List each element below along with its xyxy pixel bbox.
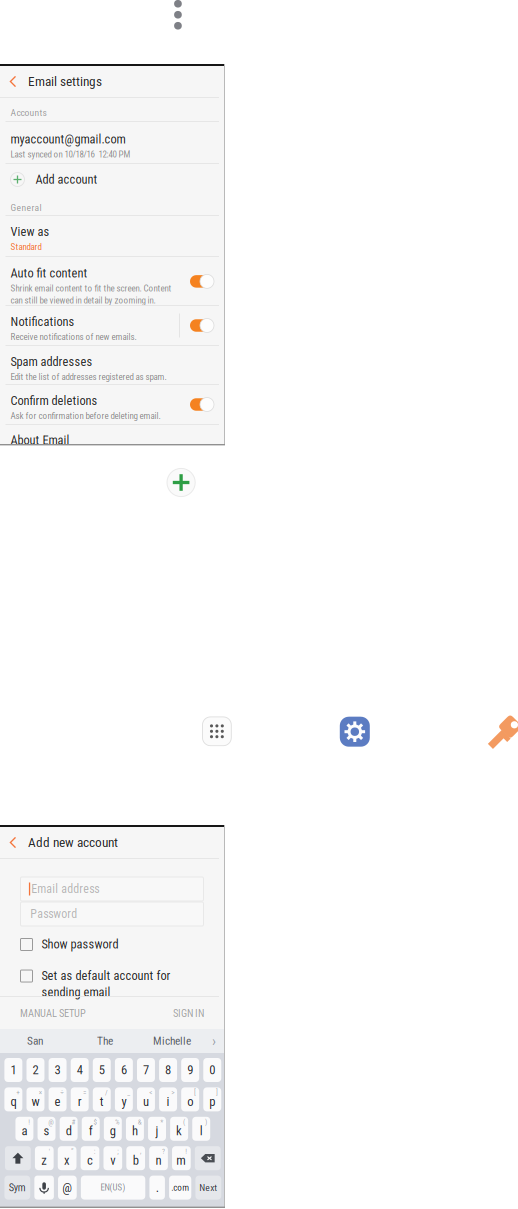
button[interactable]: EN(US)	[81, 1176, 145, 1200]
button[interactable]: MANUAL SETUP	[0, 997, 86, 1030]
button[interactable]: Michelle	[140, 1029, 204, 1053]
button[interactable]: 7	[137, 1058, 155, 1082]
button[interactable]: 4	[71, 1058, 89, 1082]
staticText: >	[171, 1088, 174, 1097]
button[interactable]: myaccount@gmail.com	[0, 122, 224, 163]
button[interactable]: The	[70, 1029, 140, 1053]
button[interactable]: 6	[115, 1058, 133, 1082]
staticText: Shrink email content to fit the screen. …	[10, 283, 171, 294]
staticText: q	[10, 1094, 16, 1109]
button[interactable]: 9	[181, 1058, 199, 1082]
button[interactable]: Voice input	[34, 1176, 54, 1200]
staticText: @	[62, 1180, 72, 1195]
staticText: v	[110, 1153, 115, 1168]
staticText: Last synced on 10/18/16 12:40 PM	[10, 149, 130, 160]
staticText: ,	[140, 1147, 141, 1156]
button[interactable]: =	[71, 1087, 89, 1111]
staticText: Michelle	[153, 1034, 191, 1048]
button[interactable]: 3	[49, 1058, 66, 1082]
button[interactable]: &	[126, 1117, 144, 1141]
button[interactable]: Password	[486, 714, 518, 758]
button[interactable]: !	[15, 1117, 33, 1141]
staticText: ?	[162, 1147, 165, 1156]
staticText: .com	[171, 1182, 189, 1193]
button[interactable]: ;	[103, 1146, 122, 1170]
button[interactable]: 5	[93, 1058, 111, 1082]
staticText: f	[89, 1124, 93, 1138]
button[interactable]: Confirm deletions	[0, 385, 224, 424]
button[interactable]: @	[58, 1176, 77, 1200]
staticText: Standard	[10, 241, 41, 252]
button[interactable]: San	[0, 1029, 70, 1053]
button[interactable]: View as	[0, 216, 224, 256]
button[interactable]: ]	[203, 1087, 221, 1111]
staticText: $	[93, 1118, 97, 1126]
button[interactable]: 0	[203, 1058, 221, 1082]
button[interactable]: ×	[26, 1087, 44, 1111]
button[interactable]: Sym	[4, 1176, 30, 1200]
button[interactable]: .com	[169, 1176, 191, 1200]
button[interactable]: [	[181, 1087, 199, 1111]
button[interactable]: <	[137, 1087, 155, 1111]
button[interactable]: >	[159, 1087, 177, 1111]
button[interactable]: :	[81, 1146, 99, 1170]
button[interactable]: 1	[4, 1058, 22, 1082]
staticText: Add new account	[28, 835, 118, 850]
staticText: General	[10, 202, 41, 213]
staticText: 3	[55, 1063, 61, 1077]
button[interactable]: Next	[195, 1176, 221, 1200]
button[interactable]: *	[148, 1117, 166, 1141]
button[interactable]: $	[82, 1117, 100, 1141]
staticText: j	[155, 1124, 158, 1138]
staticText: k	[176, 1124, 182, 1138]
button[interactable]: %	[104, 1117, 122, 1141]
button[interactable]: _	[115, 1087, 133, 1111]
button[interactable]: Add new account	[0, 827, 224, 858]
staticText: 9	[187, 1063, 193, 1077]
button[interactable]: ?	[149, 1146, 168, 1170]
button[interactable]: 8	[159, 1058, 177, 1082]
button[interactable]: +	[4, 1087, 22, 1111]
staticText: Next	[199, 1182, 217, 1193]
button[interactable]: Add account	[0, 164, 224, 195]
button[interactable]: Apps	[202, 717, 231, 746]
button[interactable]: Notifications	[0, 306, 224, 345]
button[interactable]: Set as default account for	[20, 968, 203, 1000]
staticText: About Email	[10, 433, 69, 447]
staticText: ›	[212, 1032, 216, 1050]
button[interactable]: Email settings	[0, 66, 224, 97]
staticText: '	[49, 1147, 50, 1156]
button[interactable]: About Email	[0, 425, 224, 445]
button[interactable]: (	[170, 1117, 188, 1141]
button[interactable]: !	[172, 1146, 191, 1170]
button[interactable]: “	[58, 1146, 76, 1170]
button[interactable]: /	[93, 1087, 111, 1111]
button[interactable]: ÷	[49, 1087, 66, 1111]
button[interactable]: Email address	[20, 877, 203, 901]
button[interactable]: @	[37, 1117, 55, 1141]
button[interactable]: Settings	[340, 717, 370, 747]
button[interactable]: Backspace	[195, 1146, 221, 1170]
button[interactable]: )	[192, 1117, 210, 1141]
staticText: b	[133, 1153, 139, 1168]
button[interactable]: Spam addresses	[0, 346, 224, 384]
button[interactable]: Show password	[20, 937, 203, 951]
staticText: <	[149, 1088, 152, 1097]
button[interactable]: ,	[126, 1146, 145, 1170]
button[interactable]: More suggestions	[204, 1029, 224, 1053]
button[interactable]: '	[35, 1146, 54, 1170]
button[interactable]: Password	[20, 902, 203, 926]
staticText: %	[115, 1118, 120, 1126]
button[interactable]: 2	[26, 1058, 44, 1082]
button[interactable]: .	[149, 1176, 165, 1200]
staticText: 8	[165, 1063, 171, 1077]
staticText: 2	[32, 1063, 38, 1077]
button[interactable]: #	[60, 1117, 77, 1141]
staticText: *	[160, 1118, 163, 1126]
button[interactable]: Auto fit content	[0, 257, 224, 305]
staticText: l	[200, 1124, 203, 1138]
button[interactable]: SIGN IN	[173, 997, 224, 1030]
staticText: Sym	[9, 1181, 26, 1194]
button[interactable]: Shift	[5, 1146, 31, 1170]
button[interactable]: Add	[166, 467, 196, 497]
